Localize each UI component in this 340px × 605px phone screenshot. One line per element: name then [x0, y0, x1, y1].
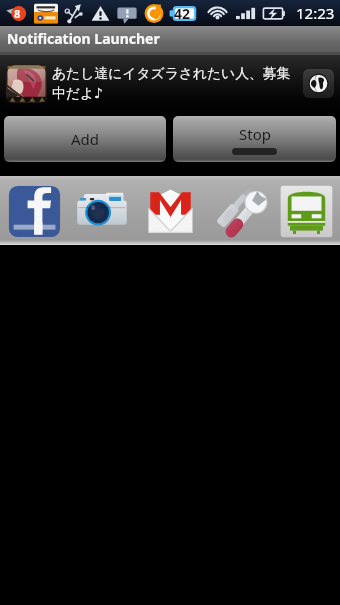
staticText: Notification Launcher — [7, 29, 160, 48]
button[interactable]: Add — [4, 116, 166, 162]
button[interactable]: Transit — [278, 183, 334, 239]
button[interactable]: Open browser — [303, 69, 334, 98]
button[interactable]: Gmail — [142, 183, 198, 239]
staticText: 8 — [14, 6, 21, 21]
staticText: 12:23 — [296, 3, 335, 23]
button[interactable]: あたし達にイタズラされたい人、募集中だよ♪ — [0, 55, 340, 112]
staticText: あたし達にイタズラされたい人、募集中だよ♪ — [52, 65, 300, 102]
staticText: Add — [71, 129, 100, 149]
button[interactable]: Stop — [173, 116, 336, 162]
staticText: 42 — [174, 4, 191, 23]
button[interactable]: Settings — [210, 183, 266, 239]
button[interactable]: Facebook — [6, 183, 62, 239]
button[interactable]: Camera — [74, 183, 130, 239]
staticText: Stop — [239, 124, 271, 144]
